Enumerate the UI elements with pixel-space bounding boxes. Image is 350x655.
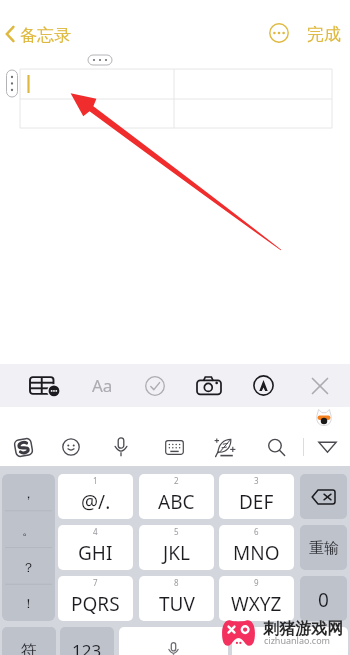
staticText: 6 xyxy=(254,526,259,537)
button[interactable]: 6 xyxy=(219,525,294,570)
button[interactable]: Close toolbar xyxy=(303,364,337,407)
button[interactable]: Hide keyboard xyxy=(310,428,344,466)
staticText: DEF xyxy=(239,489,274,515)
button[interactable]: 重输 xyxy=(300,525,347,570)
staticText: 2 xyxy=(174,475,179,486)
staticText: WXYZ xyxy=(231,591,282,617)
button[interactable]: Aa xyxy=(85,364,119,407)
staticText: 4 xyxy=(93,526,98,537)
button[interactable]: 1 xyxy=(58,474,133,519)
button[interactable]: Sogou input xyxy=(6,428,40,466)
button[interactable]: Insert table xyxy=(27,364,61,407)
button[interactable]: 备忘录 xyxy=(2,20,73,48)
button[interactable]: 7 xyxy=(58,576,133,621)
staticText: 。 xyxy=(22,522,35,538)
staticText: 1 xyxy=(93,475,98,486)
button[interactable]: ？ xyxy=(2,548,55,584)
button[interactable]: Markup xyxy=(246,364,280,407)
staticText: 刺猪游戏网 xyxy=(263,619,343,639)
button[interactable]: 9 xyxy=(219,576,294,621)
staticText: ！ xyxy=(22,595,35,611)
button[interactable]: Voice input xyxy=(119,627,228,655)
staticText: 0 xyxy=(318,587,329,613)
staticText: JKL xyxy=(163,540,190,566)
button[interactable]: More options xyxy=(269,23,289,43)
button[interactable]: 3 xyxy=(219,474,294,519)
staticText: 7 xyxy=(93,577,98,588)
staticText: PQRS xyxy=(71,591,120,617)
button[interactable]: ， xyxy=(2,474,55,510)
button[interactable]: Voice input xyxy=(104,428,138,466)
button[interactable]: Backspace xyxy=(300,474,347,519)
staticText: 重输 xyxy=(309,539,339,558)
staticText: cizhuanlao.com xyxy=(264,634,331,646)
button[interactable]: Emoji xyxy=(54,428,88,466)
staticText: ， xyxy=(22,485,35,501)
staticText: TUV xyxy=(159,591,195,617)
button[interactable]: Handwriting xyxy=(207,428,241,466)
staticText: 9 xyxy=(254,577,259,588)
staticText: 3 xyxy=(254,475,259,486)
button[interactable]: 4 xyxy=(58,525,133,570)
staticText: GHI xyxy=(78,540,113,566)
button[interactable]: 完成 xyxy=(305,24,343,45)
button[interactable]: ！ xyxy=(2,584,55,620)
button[interactable]: Keyboard layout xyxy=(157,428,191,466)
button[interactable] xyxy=(232,627,348,655)
button[interactable]: 123 xyxy=(60,627,114,655)
staticText: 5 xyxy=(174,526,179,537)
staticText: 123 xyxy=(72,639,102,655)
button[interactable]: Checklist xyxy=(138,364,172,407)
staticText: ？ xyxy=(22,559,35,575)
staticText: ABC xyxy=(158,489,195,515)
staticText: Aa xyxy=(92,374,113,397)
staticText: MNO xyxy=(233,540,280,566)
staticText: 备忘录 xyxy=(20,25,71,46)
button[interactable]: Search xyxy=(259,428,293,466)
button[interactable]: Camera xyxy=(192,364,226,407)
staticText: @/. xyxy=(81,489,111,515)
staticText: 8 xyxy=(174,577,179,588)
button[interactable]: 2 xyxy=(139,474,214,519)
button[interactable]: 符 xyxy=(2,627,56,655)
button[interactable]: 0 xyxy=(300,576,347,621)
button[interactable]: 8 xyxy=(139,576,214,621)
staticText: 符 xyxy=(21,641,37,655)
button[interactable]: 5 xyxy=(139,525,214,570)
button[interactable]: 。 xyxy=(2,511,55,547)
